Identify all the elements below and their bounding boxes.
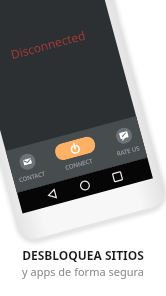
staticText: Disconnected — [9, 27, 87, 62]
staticText: CONNECT — [64, 157, 93, 172]
button[interactable]: Rate us — [114, 126, 134, 145]
staticText: RATE US — [116, 144, 141, 158]
button[interactable] — [53, 135, 97, 162]
button[interactable]: Contact — [18, 152, 37, 172]
staticText: DESBLOQUEA SITIOS — [22, 247, 144, 263]
staticText: CONTACT — [18, 170, 46, 184]
staticText: y apps de forma segura — [22, 264, 144, 279]
